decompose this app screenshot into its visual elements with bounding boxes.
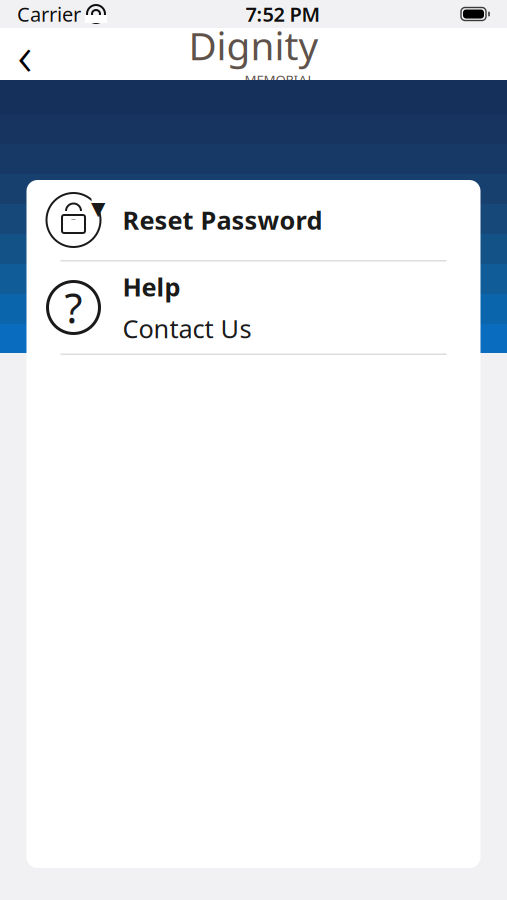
staticText: Dignity xyxy=(188,19,318,71)
staticText: 7:52 PM xyxy=(245,1,320,27)
staticText: Contact Us xyxy=(122,311,251,345)
button[interactable]: ? xyxy=(26,261,480,353)
staticText: Carrier xyxy=(17,1,81,27)
staticText: MEMORIAL xyxy=(244,71,314,88)
button[interactable]: ▼ xyxy=(26,180,480,260)
staticText: Reset Password xyxy=(122,203,322,237)
staticText: ? xyxy=(64,280,82,335)
staticText: ▼ xyxy=(91,198,105,219)
button[interactable]: Back xyxy=(0,32,50,76)
staticText: Help xyxy=(122,270,180,303)
staticText: ‹ xyxy=(17,17,32,91)
